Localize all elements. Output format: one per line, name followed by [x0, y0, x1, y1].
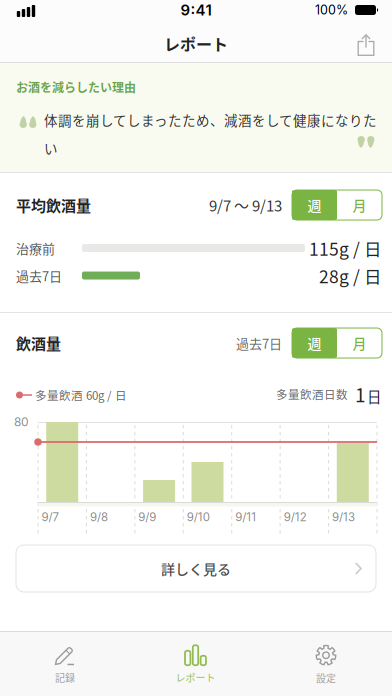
staticText: お酒を減らしたい理由 [16, 78, 136, 96]
staticText: 9/10 [187, 510, 210, 524]
staticText: 多量飲酒日数 [276, 386, 348, 402]
staticText: レポート [175, 670, 215, 685]
staticText: 月 [352, 333, 366, 353]
staticText: 9:41 [180, 1, 211, 19]
staticText: 100% [315, 2, 348, 17]
staticText: 28g / 日 [319, 263, 382, 288]
button[interactable]: 月 [337, 190, 382, 220]
staticText: 過去7日 [236, 334, 282, 352]
button[interactable]: レポート [130, 639, 261, 691]
staticText: 週 [307, 333, 321, 353]
staticText: 詳しく見る [161, 558, 231, 579]
button[interactable]: 共有 [346, 27, 386, 63]
staticText: 過去7日 [16, 266, 62, 285]
staticText: 80 [14, 415, 29, 429]
staticText: 115g / 日 [309, 235, 382, 261]
staticText: 飲酒量 [16, 332, 61, 354]
staticText: 9/12 [284, 510, 307, 524]
button[interactable]: 月 [337, 328, 382, 358]
staticText: 9/7 ～ 9/13 [209, 194, 282, 216]
button[interactable]: 設定 [261, 639, 391, 691]
staticText: 記録 [55, 670, 75, 685]
button[interactable]: 週 [292, 328, 337, 358]
staticText: 9/8 [90, 510, 108, 524]
staticText: 週 [307, 195, 321, 215]
staticText: 平均飲酒量 [16, 194, 91, 216]
staticText: 治療前 [16, 239, 55, 257]
staticText: 1 [355, 380, 366, 408]
staticText: 日 [367, 386, 382, 407]
button[interactable]: 週 [292, 190, 337, 220]
staticText: 9/13 [332, 510, 355, 524]
staticText: 9/9 [138, 510, 156, 524]
staticText: 体調を崩してしまったため、減酒をして健康になりたい [44, 110, 377, 158]
staticText: レポート [164, 32, 228, 55]
staticText: 9/7 [41, 510, 59, 524]
staticText: 設定 [316, 671, 336, 685]
staticText: 9/11 [235, 510, 256, 524]
button[interactable]: 詳しく見る [16, 545, 376, 592]
button[interactable]: 記録 [0, 639, 130, 691]
staticText: 月 [352, 195, 366, 215]
staticText: 多量飲酒 60g / 日 [35, 387, 127, 403]
